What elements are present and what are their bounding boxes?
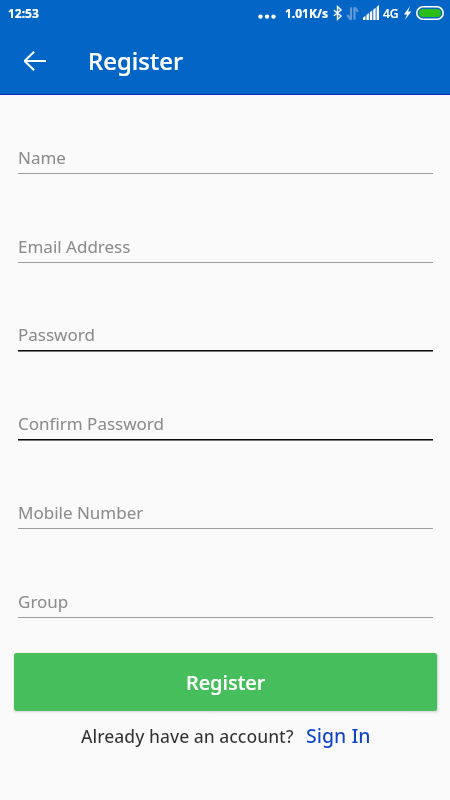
- staticText: Name: [18, 146, 66, 169]
- staticText: 4G: [383, 5, 399, 21]
- staticText: Email Address: [18, 235, 131, 258]
- button[interactable]: Group: [18, 574, 433, 618]
- button[interactable]: Name: [18, 130, 433, 174]
- staticText: Already have an account?: [81, 724, 294, 748]
- button[interactable]: Password: [18, 309, 433, 353]
- staticText: Register: [88, 44, 184, 77]
- staticText: Register: [186, 669, 266, 696]
- button[interactable]: Register: [14, 653, 437, 711]
- button[interactable]: Mobile Number: [18, 485, 433, 529]
- staticText: Group: [18, 590, 69, 613]
- staticText: Password: [18, 323, 95, 346]
- button[interactable]: Back: [13, 39, 57, 83]
- button[interactable]: Sign In: [298, 718, 379, 753]
- button[interactable]: Email Address: [18, 219, 433, 263]
- staticText: 12:53: [8, 5, 39, 21]
- button[interactable]: Confirm Password: [18, 398, 433, 442]
- staticText: 1.01K/s: [285, 5, 328, 21]
- staticText: Confirm Password: [18, 412, 164, 435]
- staticText: Sign In: [306, 722, 371, 749]
- staticText: Mobile Number: [18, 501, 144, 524]
